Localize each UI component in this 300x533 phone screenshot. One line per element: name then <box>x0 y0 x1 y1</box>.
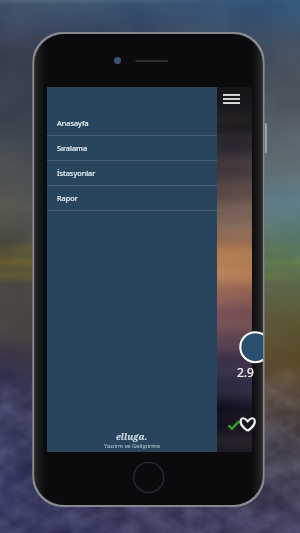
button[interactable]: Sıralama <box>47 136 217 161</box>
staticText: İstasyonlar <box>57 168 96 178</box>
button[interactable]: Anasayfa <box>47 111 217 136</box>
staticText: Sıralama <box>57 143 88 153</box>
staticText: Yazılım ve Geliştirme <box>104 442 161 450</box>
button[interactable]: Home <box>131 458 167 494</box>
staticText: Anasayfa <box>57 118 89 128</box>
button[interactable]: Open navigation drawer <box>215 87 247 111</box>
button[interactable]: İstasyonlar <box>47 161 217 186</box>
staticText: 2.9 <box>237 364 254 380</box>
button[interactable]: Rapor <box>47 186 217 211</box>
staticText: Rapor <box>57 193 78 203</box>
staticText: elluga. <box>116 430 148 442</box>
